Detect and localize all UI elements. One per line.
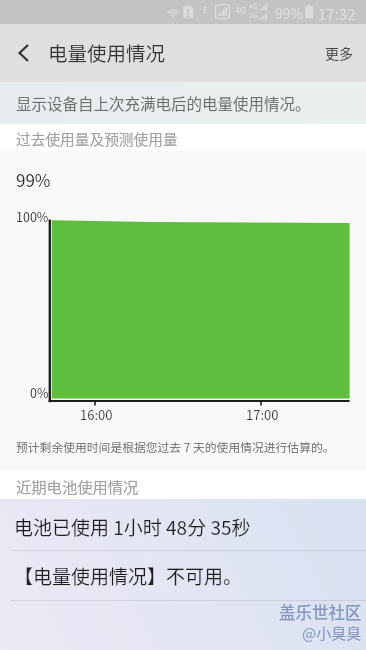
staticText: 2G	[249, 10, 258, 20]
staticText: 近期电池使用情况	[16, 475, 139, 497]
staticText: 过去使用量及预测使用量	[16, 128, 178, 149]
staticText: 更多	[325, 43, 353, 63]
staticText: 电量使用情况	[48, 38, 166, 66]
staticText: 预计剩余使用时间是根据您过去 7 天的使用情况进行估算的。	[16, 438, 335, 455]
staticText: 1	[185, 4, 192, 20]
staticText: 电池已使用 1小时 48分 35秒	[14, 513, 251, 541]
staticText: 显示设备自上次充满电后的电量使用情况。	[16, 92, 311, 114]
staticText: 17:32	[318, 3, 356, 25]
button[interactable]: 【电量使用情况】不可用。	[0, 551, 366, 600]
button[interactable]: 更多	[312, 25, 366, 81]
staticText: 16:00	[80, 405, 113, 424]
staticText: 4G	[249, 1, 258, 11]
staticText: 【电量使用情况】不可用。	[14, 562, 243, 590]
staticText: 盖乐世社区	[279, 600, 362, 624]
staticText: 100%	[16, 207, 49, 225]
staticText: 99%	[275, 3, 304, 23]
button[interactable]: Back	[0, 24, 46, 82]
staticText: 4G	[235, 4, 247, 17]
staticText: @小臭臭	[302, 622, 362, 644]
button[interactable]: 电池已使用 1小时 48分 35秒	[0, 499, 366, 553]
staticText: 17:00	[246, 405, 279, 424]
staticText: E	[203, 4, 208, 16]
staticText: 0%	[30, 383, 49, 401]
staticText: 99%	[16, 167, 51, 192]
